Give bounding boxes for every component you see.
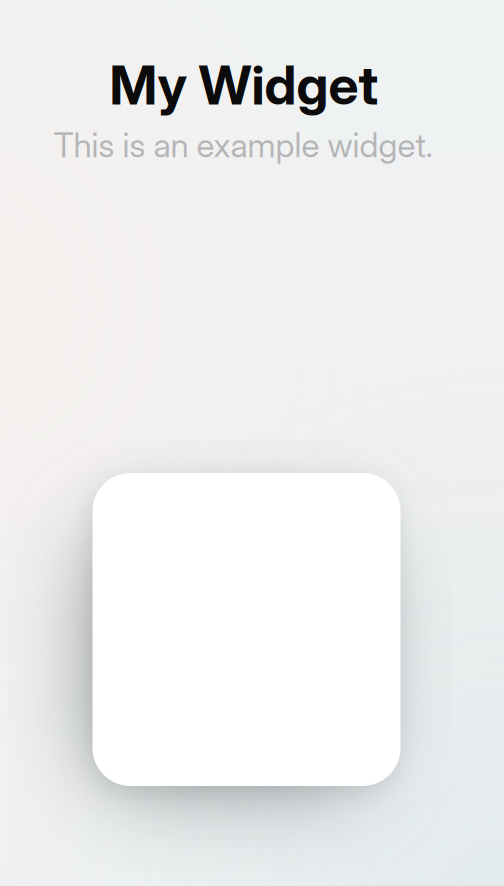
staticText: This is an example widget. bbox=[53, 125, 432, 165]
staticText: My Widget bbox=[109, 53, 378, 117]
button[interactable]: My Widget preview bbox=[92, 473, 400, 786]
